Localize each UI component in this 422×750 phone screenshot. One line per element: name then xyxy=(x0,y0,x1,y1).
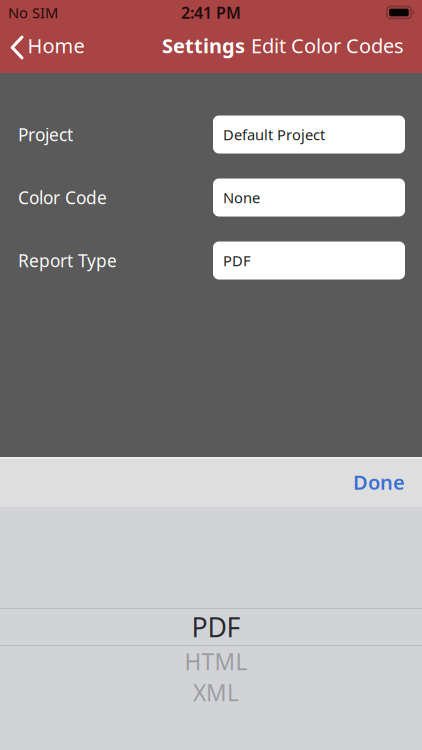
staticText: Home xyxy=(27,32,84,59)
staticText: None xyxy=(223,188,260,207)
staticText: HTML xyxy=(184,646,247,676)
button[interactable]: PDF xyxy=(0,608,422,646)
staticText: Edit Color Codes xyxy=(251,32,404,59)
button[interactable]: None xyxy=(213,178,405,216)
staticText: PDF xyxy=(223,251,251,270)
button[interactable]: Edit Color Codes xyxy=(245,23,422,67)
staticText: No SIM xyxy=(8,3,58,22)
staticText: Done xyxy=(353,469,405,495)
button[interactable]: XML xyxy=(0,677,422,708)
button[interactable]: HTML xyxy=(0,646,422,677)
button[interactable]: Default Project xyxy=(213,115,405,153)
button[interactable]: Back to Home xyxy=(0,23,94,67)
button[interactable]: PDF xyxy=(213,241,405,279)
staticText: Color Code xyxy=(18,186,107,209)
staticText: 2:41 PM xyxy=(181,2,241,23)
staticText: Settings xyxy=(162,32,245,59)
staticText: PDF xyxy=(191,609,240,645)
button[interactable]: Done xyxy=(336,460,422,504)
staticText: XML xyxy=(193,677,239,707)
staticText: Default Project xyxy=(223,125,325,144)
staticText: Report Type xyxy=(18,249,117,272)
staticText: Project xyxy=(18,123,73,146)
